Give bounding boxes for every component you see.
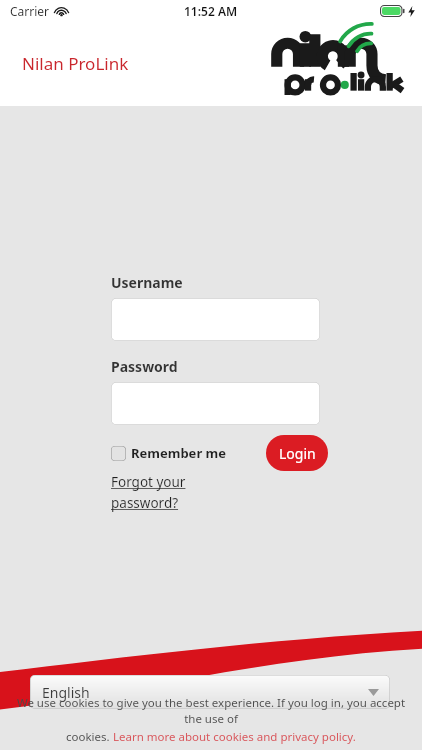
staticText: Remember me [131, 444, 227, 462]
button[interactable]: Password field [111, 382, 320, 425]
button[interactable]: English [30, 675, 390, 709]
staticText: cookies. [66, 729, 113, 745]
button[interactable]: Username field [111, 298, 320, 341]
other: Nilan ProLink logo [272, 33, 408, 95]
button[interactable]: Remember me [111, 440, 227, 466]
button[interactable]: Forgot your [111, 473, 186, 512]
staticText: English [42, 683, 90, 702]
staticText: We use cookies to give you the best expe… [8, 695, 414, 727]
staticText: 11:52 AM [184, 3, 238, 19]
staticText: password? [111, 494, 179, 512]
staticText: Nilan ProLink [22, 52, 129, 75]
staticText: Carrier [10, 3, 50, 19]
staticText: Username [111, 273, 183, 292]
staticText: Login [279, 444, 316, 463]
staticText: Forgot your [111, 473, 186, 491]
button[interactable]: Learn more about cookies and privacy pol… [113, 729, 356, 745]
staticText: Password [111, 357, 178, 376]
button[interactable]: Login [266, 435, 328, 471]
